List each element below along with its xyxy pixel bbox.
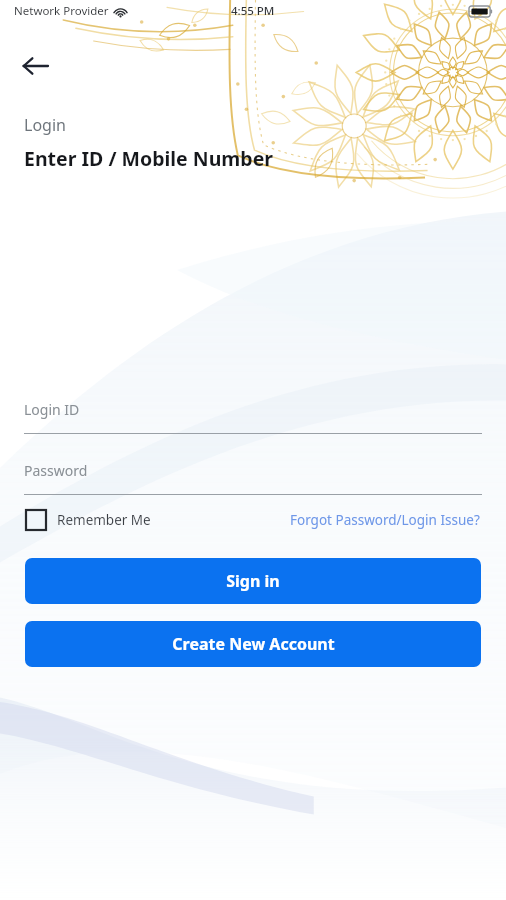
staticText: Network Provider (14, 3, 109, 19)
button[interactable]: Forgot Password/Login Issue? (288, 505, 482, 535)
button[interactable]: Remember Me (24, 504, 153, 536)
staticText: Password (24, 461, 88, 480)
button[interactable]: Sign in (25, 558, 481, 604)
staticText: Enter ID / Mobile Number (24, 145, 274, 172)
staticText: 4:55 PM (231, 3, 275, 19)
button[interactable]: Password (0, 461, 506, 495)
staticText: Create New Account (172, 633, 335, 655)
staticText: Forgot Password/Login Issue? (290, 511, 480, 529)
staticText: Remember Me (57, 511, 151, 529)
button[interactable]: Login ID (0, 400, 506, 434)
button[interactable]: Back (8, 40, 60, 92)
staticText: Sign in (226, 570, 280, 592)
staticText: Login (24, 114, 66, 136)
staticText: Login ID (24, 400, 80, 419)
button[interactable]: Create New Account (25, 621, 481, 667)
